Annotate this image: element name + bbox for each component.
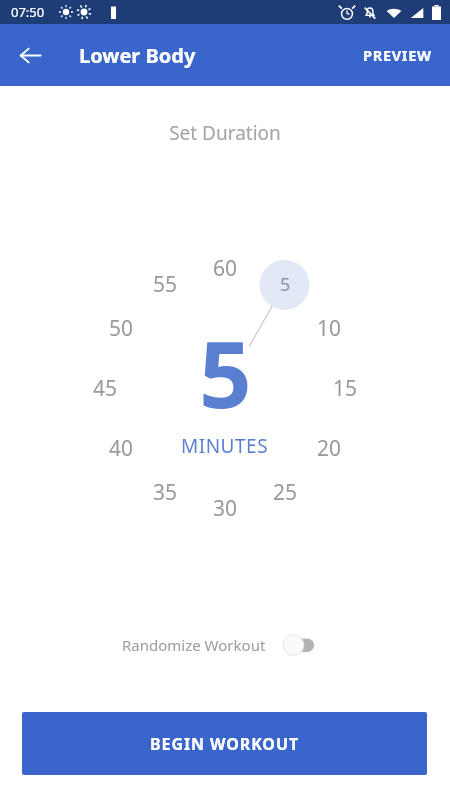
staticText: BEGIN WORKOUT [150, 733, 300, 755]
staticText: 07:50 [11, 3, 45, 21]
button[interactable]: 45 [83, 370, 127, 406]
button[interactable]: Randomize Workout [120, 632, 320, 658]
button[interactable]: 5 [263, 266, 307, 302]
staticText: 5 [280, 272, 291, 297]
staticText: 5 [199, 310, 252, 410]
staticText: 55 [153, 270, 178, 299]
staticText: 40 [109, 434, 134, 463]
button[interactable]: Back [8, 33, 52, 77]
staticText: Lower Body [79, 42, 196, 69]
button[interactable]: 55 [143, 266, 187, 302]
button[interactable]: 50 [99, 310, 143, 346]
staticText: MINUTES [181, 433, 269, 459]
staticText: 10 [317, 314, 342, 343]
button[interactable]: 15 [323, 370, 367, 406]
button[interactable]: 30 [203, 490, 247, 526]
staticText: 25 [273, 478, 298, 507]
button[interactable]: 20 [307, 430, 351, 466]
staticText: 30 [213, 494, 238, 523]
staticText: PREVIEW [363, 45, 432, 65]
staticText: 45 [93, 374, 118, 403]
staticText: 50 [109, 314, 134, 343]
button[interactable]: Randomize Workout toggle [282, 634, 318, 656]
button[interactable]: 40 [99, 430, 143, 466]
button[interactable]: 10 [307, 310, 351, 346]
button[interactable]: 35 [143, 474, 187, 510]
staticText: Set Duration [0, 120, 450, 146]
staticText: 20 [317, 434, 342, 463]
button[interactable]: 25 [263, 474, 307, 510]
button[interactable]: 60 [203, 250, 247, 286]
button[interactable]: BEGIN WORKOUT [22, 712, 427, 775]
staticText: 35 [153, 478, 178, 507]
button[interactable]: PREVIEW [351, 35, 444, 75]
staticText: 15 [333, 374, 358, 403]
staticText: 60 [213, 254, 238, 283]
staticText: Randomize Workout [122, 635, 266, 655]
